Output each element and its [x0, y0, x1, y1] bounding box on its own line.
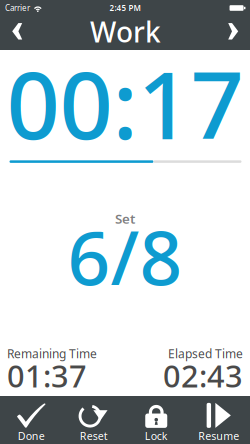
staticText: Set [115, 210, 135, 227]
staticText: Resume [198, 429, 239, 443]
staticText: 00:17 [6, 41, 243, 165]
button[interactable]: Resume [187, 396, 250, 444]
staticText: 6/8 [67, 206, 182, 306]
button[interactable]: Done [0, 396, 62, 444]
staticText: 02:43 [163, 355, 243, 396]
staticText: Elapsed Time [168, 345, 243, 361]
staticText: 01:37 [7, 355, 87, 396]
staticText: Lock [145, 429, 168, 443]
staticText: Remaining Time [7, 345, 97, 361]
staticText: 2:45 PM [109, 3, 140, 13]
staticText: Carrier [5, 3, 30, 13]
button[interactable]: Lock [125, 396, 187, 444]
button[interactable]: Reset [62, 396, 125, 444]
staticText: Reset [80, 429, 108, 443]
button[interactable]: Previous interval [0, 14, 36, 48]
staticText: Done [18, 429, 45, 443]
button[interactable]: Next interval [214, 14, 250, 48]
staticText: Work [90, 13, 161, 50]
